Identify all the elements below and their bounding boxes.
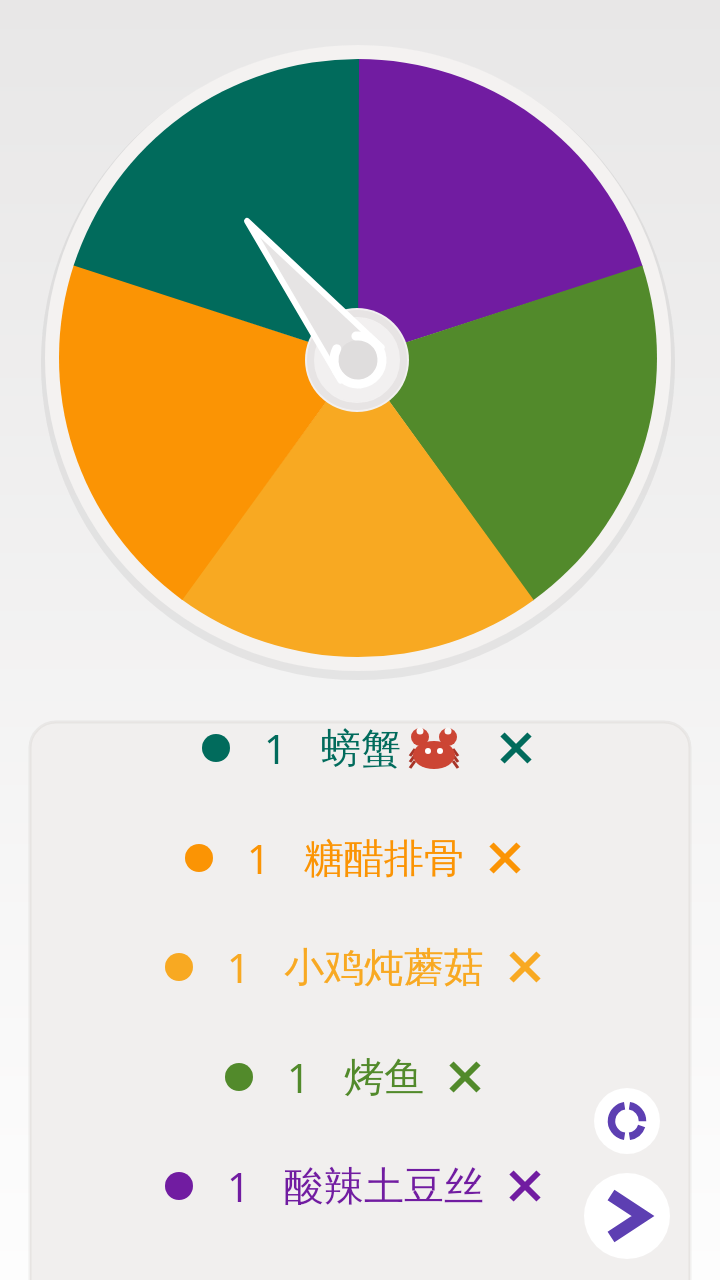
- staticText: 烤鱼: [344, 1052, 424, 1102]
- button[interactable]: 1: [202, 721, 531, 775]
- staticText: 1: [287, 1050, 310, 1104]
- button[interactable]: [510, 952, 540, 982]
- button[interactable]: 1: [225, 1050, 480, 1104]
- button[interactable]: 1: [165, 940, 540, 994]
- button[interactable]: 1: [185, 831, 520, 885]
- staticText: 1: [227, 940, 250, 994]
- button[interactable]: [450, 1062, 480, 1092]
- staticText: 小鸡炖蘑菇: [284, 942, 484, 992]
- button[interactable]: [594, 1088, 660, 1154]
- staticText: 糖醋排骨: [304, 833, 464, 883]
- button[interactable]: [510, 1171, 540, 1201]
- staticText: 螃蟹: [321, 723, 401, 773]
- button[interactable]: 1: [165, 1159, 540, 1213]
- staticText: 1: [264, 721, 287, 775]
- staticText: 1: [227, 1159, 250, 1213]
- staticText: 酸辣土豆丝: [284, 1161, 484, 1211]
- button[interactable]: [501, 733, 531, 763]
- staticText: 1: [247, 831, 270, 885]
- button[interactable]: [584, 1173, 670, 1259]
- button[interactable]: [490, 843, 520, 873]
